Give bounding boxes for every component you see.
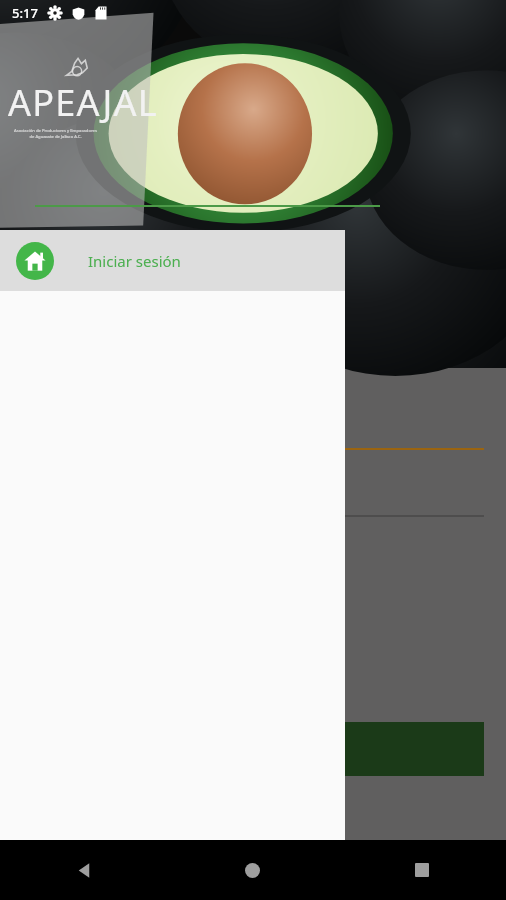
staticText: Asociación de Productores y Empacadores …	[14, 128, 97, 139]
button[interactable]: Iniciar sesión	[0, 230, 345, 291]
staticText: 5:17	[12, 4, 38, 22]
button[interactable]	[4, 722, 484, 776]
staticText: APEAJAL	[8, 78, 158, 127]
button[interactable]: Recent apps	[337, 840, 506, 900]
button[interactable]: Back	[0, 840, 168, 900]
button[interactable]: Home	[168, 840, 337, 900]
staticText: Iniciar sesión	[88, 251, 181, 271]
